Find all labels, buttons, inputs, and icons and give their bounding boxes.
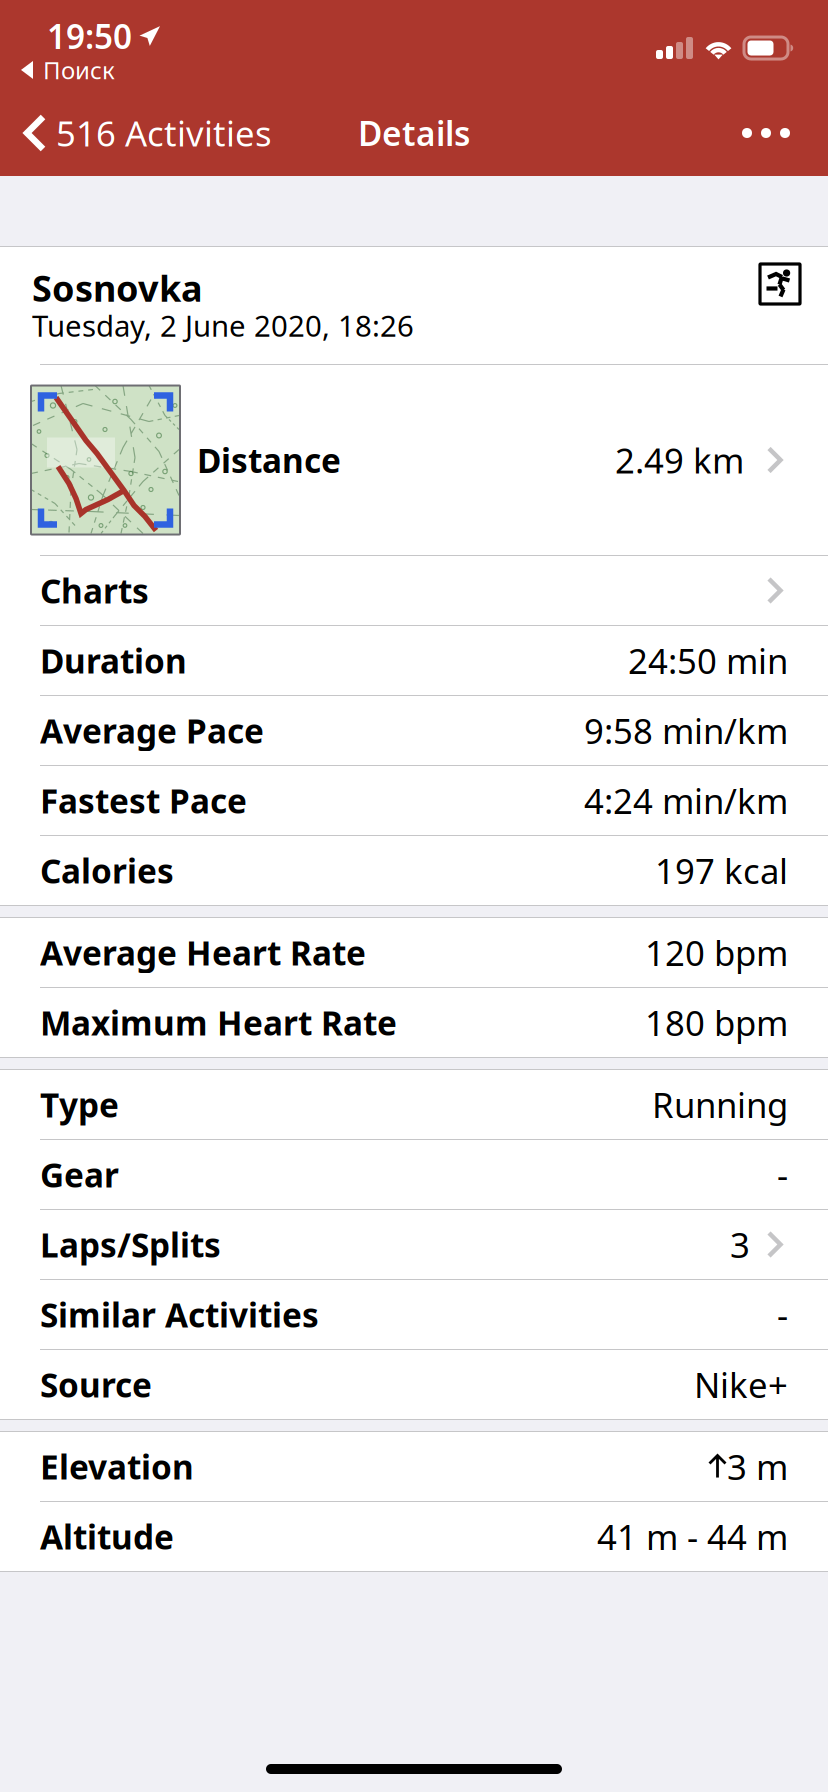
button[interactable]: Gear (0, 1140, 828, 1209)
staticText: Distance (197, 438, 341, 482)
button[interactable]: Source (0, 1350, 828, 1419)
staticText: 3 (730, 1221, 750, 1267)
button[interactable]: Elevation (0, 1432, 828, 1501)
button[interactable]: Altitude (0, 1502, 828, 1571)
staticText: Running (652, 1081, 788, 1127)
button[interactable]: Type (0, 1070, 828, 1139)
staticText: Gear (40, 1152, 119, 1197)
staticText: 197 kcal (655, 847, 788, 893)
staticText: 2.49 km (615, 437, 744, 483)
button[interactable]: More options (716, 104, 816, 162)
staticText: 180 bpm (645, 999, 788, 1045)
staticText: - (777, 1291, 788, 1337)
staticText: Charts (40, 568, 149, 613)
button[interactable]: Similar Activities (0, 1280, 828, 1349)
button[interactable]: Fastest Pace (0, 766, 828, 835)
staticText: Fastest Pace (40, 778, 247, 823)
button[interactable]: Charts (0, 556, 828, 625)
button[interactable]: Laps/Splits (0, 1210, 828, 1279)
staticText: Details (358, 111, 470, 155)
staticText: Sosnovka (32, 264, 203, 312)
staticText: Calories (40, 848, 174, 893)
staticText: Maximum Heart Rate (40, 1000, 397, 1045)
button[interactable]: 516 Activities (0, 104, 286, 162)
staticText: Altitude (40, 1514, 174, 1559)
staticText: Source (40, 1362, 152, 1407)
staticText: Laps/Splits (40, 1222, 221, 1267)
staticText: 41 m - 44 m (597, 1513, 788, 1559)
button[interactable]: Maximum Heart Rate (0, 988, 828, 1057)
staticText: Average Heart Rate (40, 930, 366, 975)
staticText: Nike+ (694, 1361, 788, 1407)
staticText: 3 m (727, 1443, 788, 1489)
button[interactable]: Average Pace (0, 696, 828, 765)
staticText: Average Pace (40, 708, 264, 753)
staticText: 24:50 min (628, 637, 788, 683)
staticText: Duration (40, 638, 187, 683)
staticText: Elevation (40, 1444, 194, 1489)
button[interactable]: Calories (0, 836, 828, 905)
button[interactable]: Distance (0, 365, 828, 555)
staticText: Поиск (43, 54, 115, 86)
staticText: - (777, 1151, 788, 1197)
staticText: Similar Activities (40, 1292, 319, 1337)
button[interactable]: Duration (0, 626, 828, 695)
staticText: Type (40, 1082, 119, 1127)
staticText: 9:58 min/km (584, 707, 788, 753)
staticText: 120 bpm (645, 929, 788, 975)
staticText: Tuesday, 2 June 2020, 18:26 (32, 306, 414, 345)
button[interactable]: Average Heart Rate (0, 918, 828, 987)
staticText: 19:50 (47, 14, 132, 58)
staticText: 516 Activities (56, 110, 272, 156)
staticText: 4:24 min/km (584, 777, 788, 823)
